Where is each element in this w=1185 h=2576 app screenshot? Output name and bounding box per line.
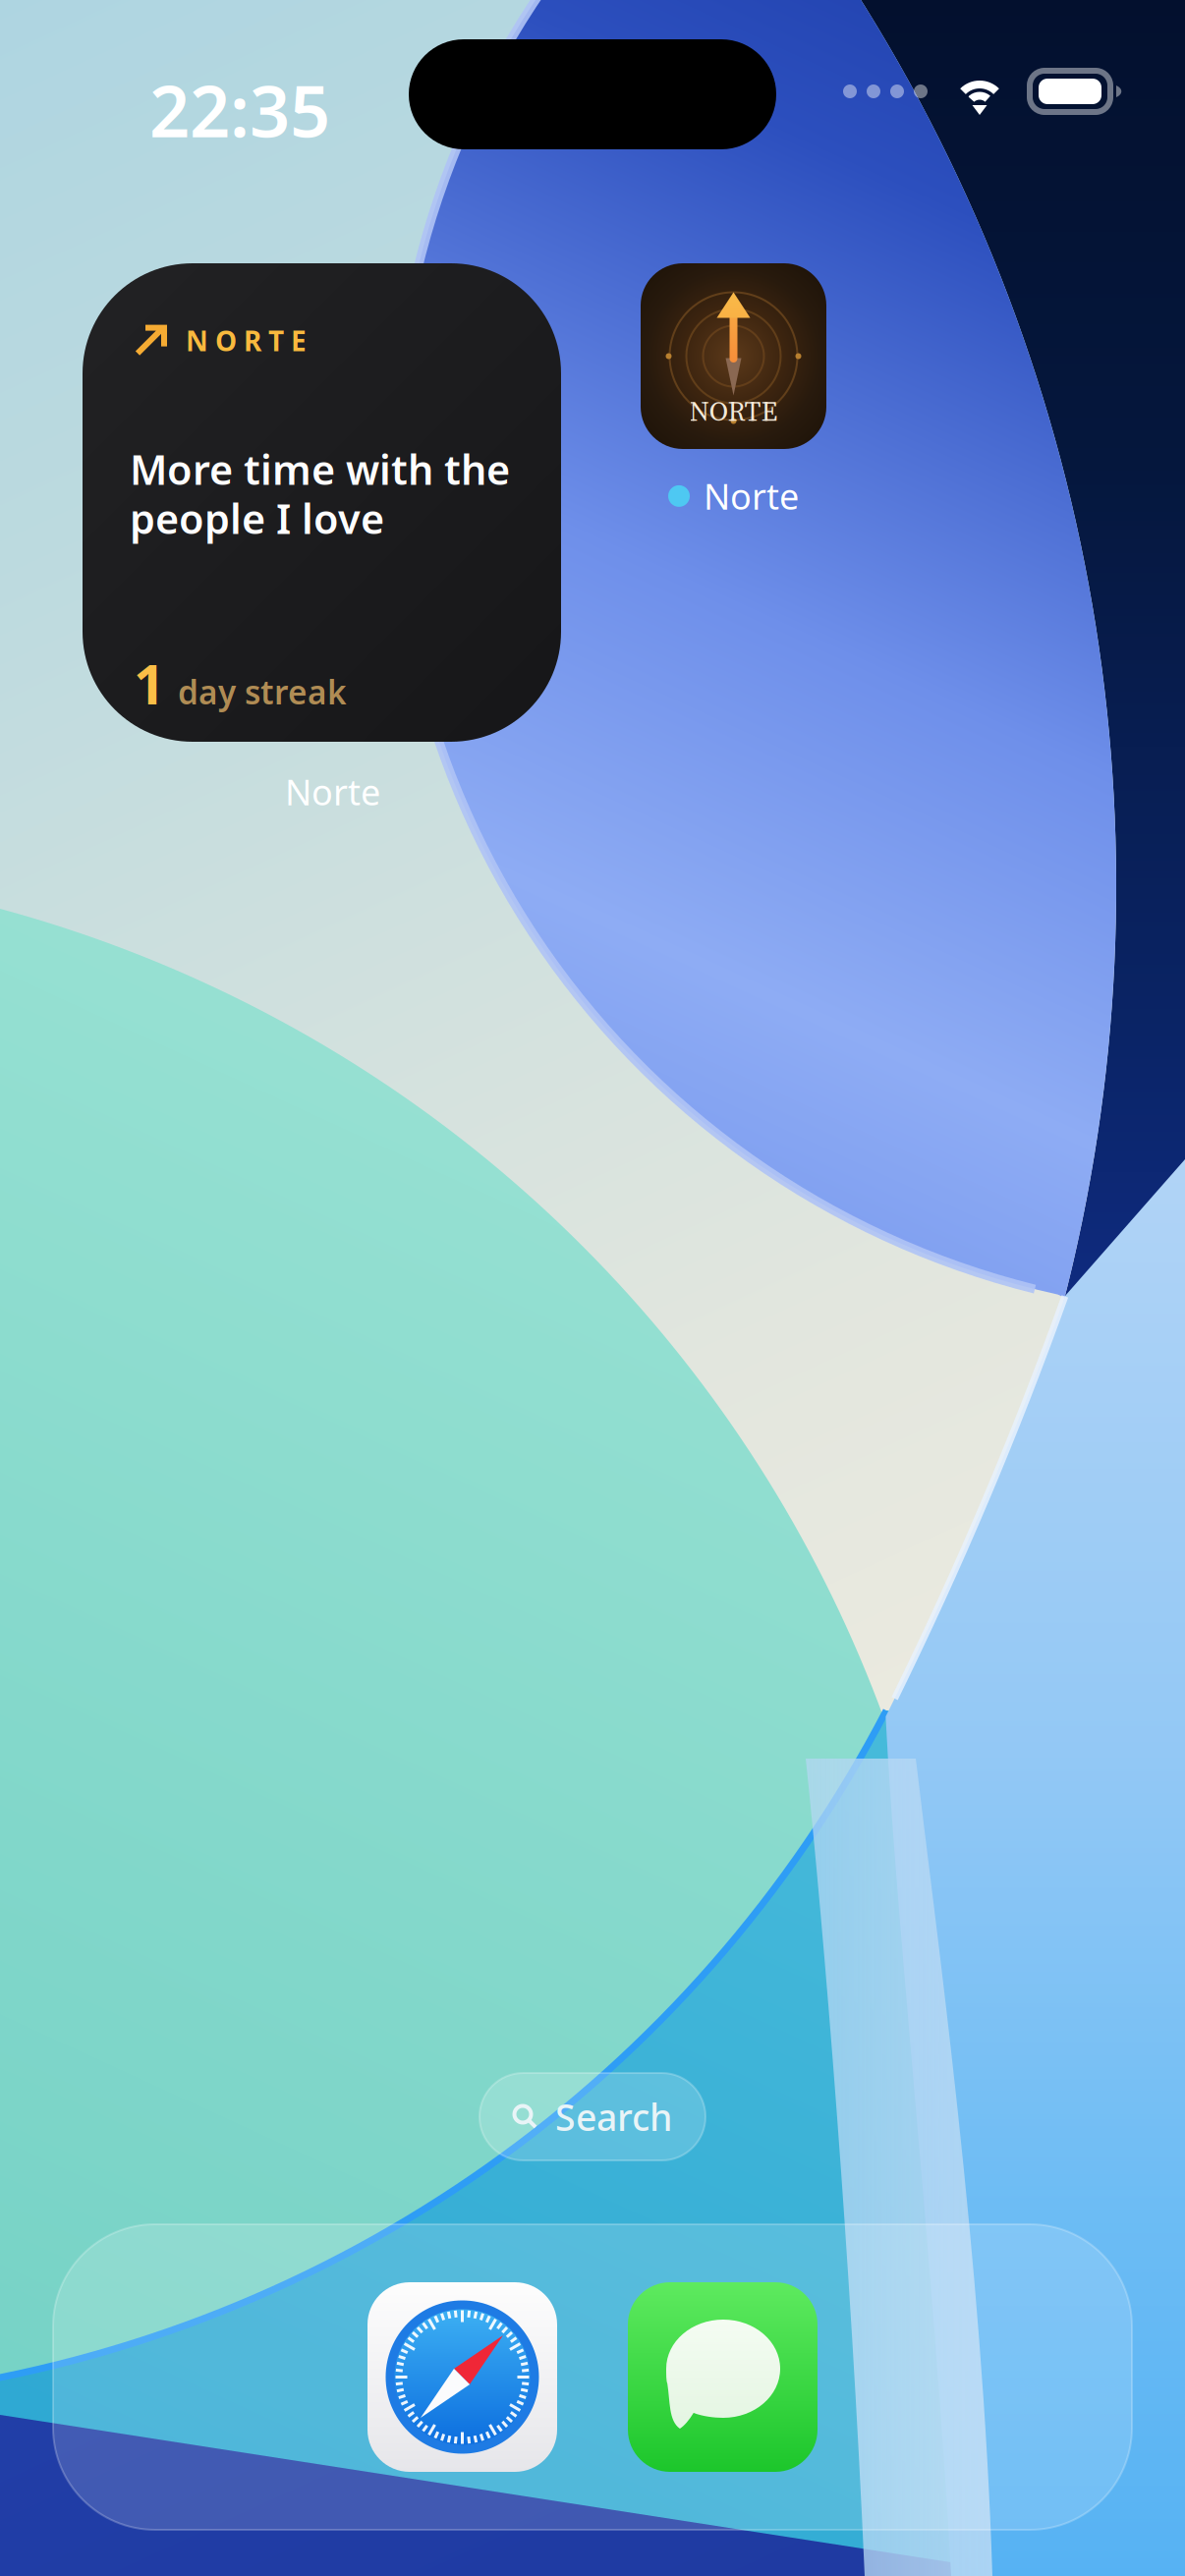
staticText: More time with the	[130, 442, 510, 496]
staticText: 1	[134, 646, 165, 720]
staticText: NORTE	[689, 392, 778, 430]
staticText: N O R T E	[186, 322, 307, 359]
button[interactable]: Messages	[628, 2282, 818, 2472]
button[interactable]: N O R T E	[83, 263, 561, 742]
staticText: Norte	[285, 768, 380, 815]
staticText: people I love	[130, 491, 384, 545]
staticText: Search	[555, 2092, 672, 2141]
button[interactable]: NORTE	[641, 263, 826, 520]
staticText: day streak	[178, 670, 347, 713]
staticText: 22:35	[149, 63, 330, 157]
button[interactable]: Safari	[367, 2282, 557, 2472]
staticText: Norte	[704, 473, 799, 520]
button[interactable]: Search	[480, 2073, 705, 2160]
